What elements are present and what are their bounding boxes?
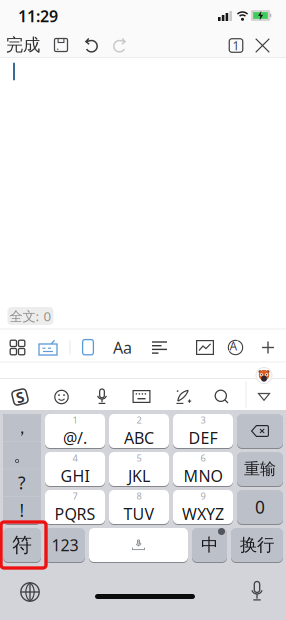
button[interactable]: Dictation (244, 578, 270, 604)
staticText: WXYZ (182, 503, 224, 524)
button[interactable]: Search (209, 384, 233, 408)
staticText: ! (19, 499, 24, 522)
button[interactable]: 完成 (6, 33, 40, 57)
button[interactable]: Next keyboard (17, 579, 43, 605)
button[interactable]: @/. (45, 414, 105, 448)
staticText: 7 (72, 490, 77, 502)
staticText: 5 (136, 452, 141, 464)
staticText: 8 (136, 490, 141, 502)
button[interactable]: Voice input (90, 384, 114, 408)
staticText: S (16, 387, 24, 407)
button[interactable]: Pages (224, 33, 248, 57)
button[interactable]: Delete (237, 414, 283, 448)
button[interactable]: ! (3, 497, 41, 524)
staticText: PQRS (54, 503, 95, 524)
button[interactable]: DEF (173, 414, 233, 448)
staticText: 1 (72, 414, 77, 426)
staticText: 中 (201, 534, 218, 556)
button[interactable]: Sticker suggestion (256, 367, 272, 383)
button[interactable]: 。 (3, 442, 41, 469)
staticText: 0 (255, 495, 265, 518)
staticText: TUV (123, 503, 154, 524)
button[interactable]: 0 (237, 490, 283, 524)
staticText: 0 (43, 307, 51, 325)
button[interactable]: MNO (173, 452, 233, 486)
button[interactable]: ABC (109, 414, 169, 448)
staticText: 重输 (244, 459, 276, 479)
staticText: DEF (188, 427, 217, 448)
button[interactable]: Tools (4, 334, 30, 360)
button[interactable]: TUV (109, 490, 169, 524)
button[interactable]: Mobile view (75, 334, 101, 360)
staticText: GHI (60, 465, 89, 486)
staticText: 9 (200, 490, 205, 502)
staticText: 换行 (240, 534, 274, 556)
button[interactable]: Close (250, 33, 274, 57)
button[interactable]: Translate (222, 334, 248, 360)
button[interactable]: Emoji (49, 385, 73, 409)
staticText: 4 (72, 452, 77, 464)
staticText: 3 (200, 414, 205, 426)
staticText: 完成 (6, 34, 40, 56)
button[interactable]: Space (89, 528, 188, 562)
button[interactable]: Redo (108, 33, 132, 57)
button[interactable]: Paragraph (146, 334, 172, 360)
button[interactable]: GHI (45, 452, 105, 486)
button[interactable]: Text format (108, 334, 136, 360)
staticText: 1 (232, 37, 239, 53)
button[interactable]: Insert (192, 334, 218, 360)
button[interactable]: Hide keyboard (252, 387, 276, 407)
staticText: 11:29 (18, 5, 58, 27)
button[interactable]: PQRS (45, 490, 105, 524)
staticText: @/. (63, 427, 87, 448)
staticText: 。 (13, 445, 30, 466)
staticText: MNO (183, 465, 222, 486)
button[interactable]: JKL (109, 452, 169, 486)
button[interactable]: 换行 (231, 528, 283, 562)
staticText: Aa (113, 337, 132, 358)
button[interactable]: ， (3, 414, 41, 441)
button[interactable]: Add (255, 334, 281, 360)
button[interactable]: 重输 (237, 452, 283, 486)
button[interactable]: 123 (45, 528, 85, 562)
button[interactable]: ? (3, 469, 41, 496)
staticText: ABC (124, 427, 154, 448)
button[interactable]: Undo (79, 33, 103, 57)
staticText: 123 (51, 534, 78, 556)
button[interactable]: WXYZ (173, 490, 233, 524)
button[interactable]: Handwriting (171, 384, 195, 408)
button[interactable]: 中文 (192, 528, 227, 562)
button[interactable]: 符 (3, 528, 41, 562)
button[interactable]: Save (49, 33, 73, 57)
staticText: 6 (200, 452, 205, 464)
staticText: 符 (12, 533, 32, 557)
staticText: JKL (128, 465, 150, 486)
staticText: ? (18, 471, 26, 494)
button[interactable]: Keyboard (129, 384, 153, 408)
staticText: ， (13, 417, 30, 438)
staticText: 2 (136, 414, 141, 426)
button[interactable]: Sogou (8, 385, 32, 409)
staticText: A (229, 338, 237, 354)
staticText: 全文: (9, 307, 39, 325)
button[interactable]: Input settings (35, 334, 61, 360)
